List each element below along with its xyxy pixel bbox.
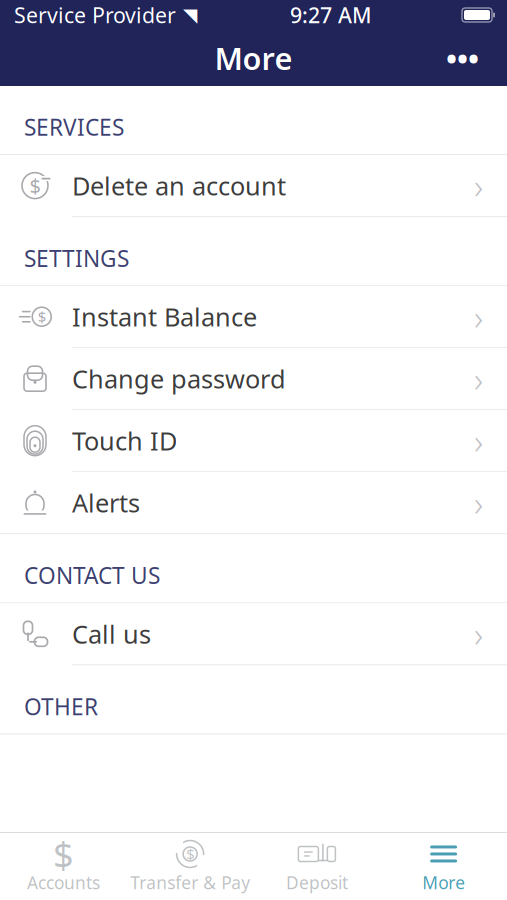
button[interactable]: More — [380, 831, 507, 900]
staticText: CONTACT US — [24, 560, 160, 590]
staticText: Deposit — [286, 871, 348, 894]
staticText: Alerts — [72, 486, 140, 519]
button[interactable]: More options — [432, 28, 493, 87]
staticText: Accounts — [27, 871, 100, 894]
staticText: Transfer & Pay — [130, 871, 250, 894]
staticText: Change password — [72, 362, 286, 395]
button[interactable]: $ — [0, 831, 127, 900]
staticText: Call us — [72, 617, 151, 651]
button[interactable]: Change password — [0, 348, 507, 410]
staticText: › — [474, 356, 483, 402]
staticText: OTHER — [24, 691, 98, 721]
button[interactable]: $ — [0, 154, 507, 217]
staticText: More — [214, 38, 292, 78]
staticText: Service Provider — [14, 1, 176, 29]
button[interactable]: $ — [0, 285, 507, 348]
staticText: SETTINGS — [24, 243, 129, 273]
staticText: 9:27 AM — [290, 1, 372, 29]
button[interactable]: $ — [127, 831, 254, 900]
button[interactable]: Call us — [0, 602, 507, 665]
staticText: Delete an account — [72, 169, 286, 202]
staticText: Instant Balance — [72, 300, 257, 333]
button[interactable]: Touch ID — [0, 410, 507, 472]
staticText: More — [422, 871, 465, 894]
staticText: › — [474, 163, 483, 209]
staticText: › — [474, 480, 483, 526]
staticText: Touch ID — [72, 424, 177, 457]
staticText: › — [474, 611, 483, 657]
staticText: ••• — [446, 38, 479, 77]
staticText: › — [474, 294, 483, 340]
button[interactable]: Alerts — [0, 472, 507, 534]
staticText: › — [474, 418, 483, 464]
staticText: $ — [29, 172, 40, 199]
staticText: SERVICES — [24, 112, 124, 142]
staticText: $ — [186, 844, 194, 864]
staticText: $ — [53, 830, 74, 878]
button[interactable]: Deposit — [253, 831, 380, 900]
staticText: $ — [38, 307, 46, 326]
staticText: ◥ — [183, 4, 197, 26]
